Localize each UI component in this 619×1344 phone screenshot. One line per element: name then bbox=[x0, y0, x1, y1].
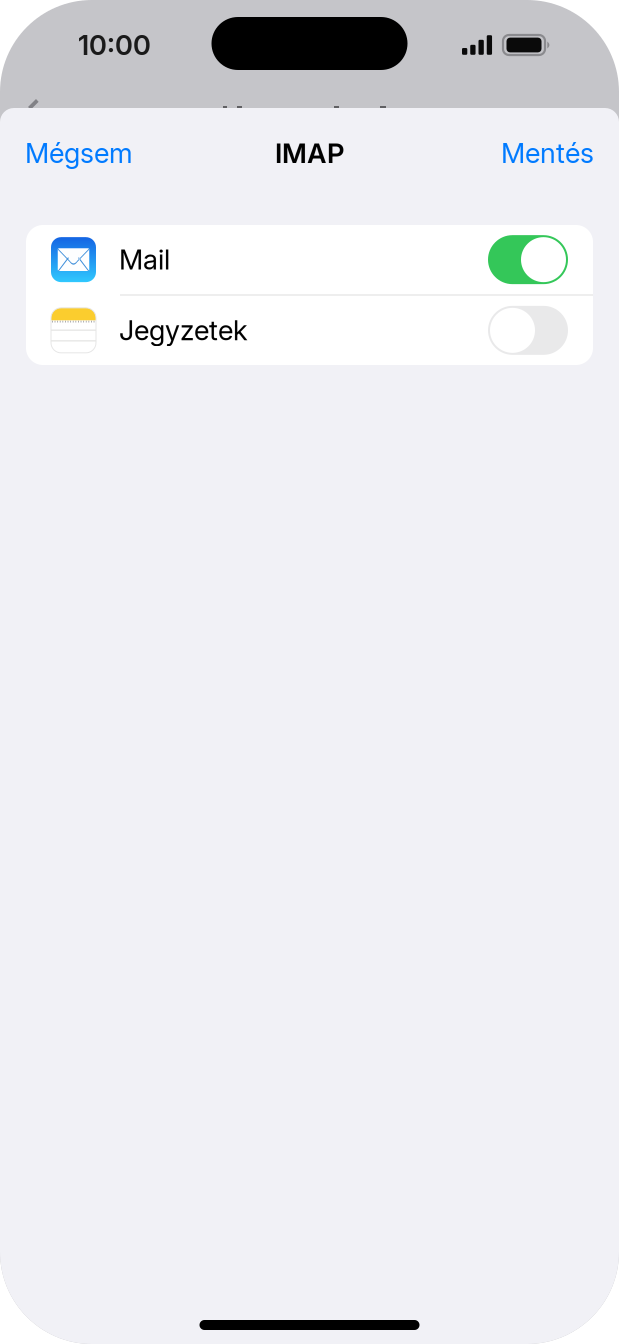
staticText: Mentés bbox=[501, 136, 594, 170]
button[interactable]: Mail, on bbox=[488, 235, 568, 284]
button[interactable]: Mégsem bbox=[19, 126, 139, 180]
staticText: IMAP bbox=[275, 137, 344, 170]
staticText: Jegyzetek bbox=[119, 314, 248, 347]
button[interactable]: Jegyzetek, off bbox=[488, 306, 568, 355]
button[interactable]: Mentés bbox=[495, 126, 600, 180]
staticText: Mail bbox=[119, 243, 170, 276]
staticText: Mégsem bbox=[25, 136, 133, 170]
staticText: 10:00 bbox=[78, 28, 151, 62]
button[interactable]: Jegyzetek bbox=[26, 296, 593, 365]
button[interactable]: Mail bbox=[26, 225, 593, 294]
